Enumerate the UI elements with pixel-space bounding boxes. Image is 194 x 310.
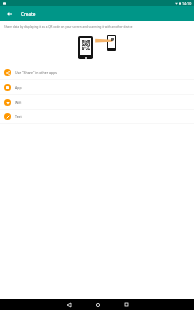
button[interactable]: Text [0, 109, 194, 124]
staticText: Wifi [15, 100, 22, 105]
staticText: App [15, 85, 22, 90]
button[interactable]: Use "Share" in other apps [0, 65, 194, 80]
button[interactable]: Wifi [0, 95, 194, 110]
staticText: Use "Share" in other apps [15, 70, 58, 75]
button[interactable]: App [0, 80, 194, 95]
button[interactable]: Navigate up [0, 6, 18, 21]
staticText: Share data by displaying it as a QR code… [4, 25, 133, 29]
staticText: Text [15, 114, 22, 119]
button[interactable]: Back [54, 299, 83, 310]
staticText: Create [21, 11, 36, 17]
button[interactable]: Home [83, 299, 112, 310]
staticText: 14:10 [182, 1, 192, 6]
button[interactable]: Recent apps [112, 299, 141, 310]
